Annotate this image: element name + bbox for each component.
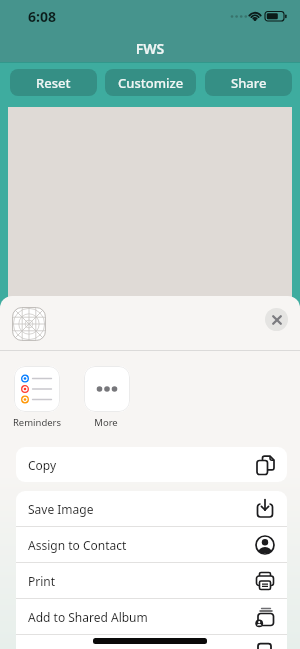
staticText: FWS — [0, 39, 300, 58]
button[interactable]: Customize — [105, 69, 196, 96]
staticText: 6:08 — [22, 7, 62, 26]
button[interactable]: More — [76, 416, 136, 429]
button[interactable]: Print — [16, 563, 287, 598]
staticText: Add to Shared Album — [28, 609, 148, 625]
button[interactable] — [14, 366, 60, 412]
staticText: Reset — [36, 74, 71, 92]
button[interactable]: Reset — [10, 69, 97, 96]
button[interactable]: Reminders — [7, 416, 67, 429]
staticText: Share — [231, 74, 267, 92]
staticText: Customize — [118, 74, 184, 92]
staticText: Copy — [28, 457, 57, 473]
button[interactable]: Save Image — [16, 491, 287, 526]
staticText: Assign to Contact — [28, 537, 127, 553]
button[interactable] — [84, 366, 130, 412]
button[interactable]: Share — [205, 69, 292, 96]
staticText: Save Image — [28, 501, 94, 517]
button[interactable] — [12, 307, 46, 341]
button[interactable] — [265, 308, 288, 331]
staticText: Print — [28, 573, 56, 589]
button[interactable]: Assign to Contact — [16, 527, 287, 562]
button[interactable]: Copy — [16, 447, 287, 482]
button[interactable]: Add to Shared Album — [16, 599, 287, 634]
